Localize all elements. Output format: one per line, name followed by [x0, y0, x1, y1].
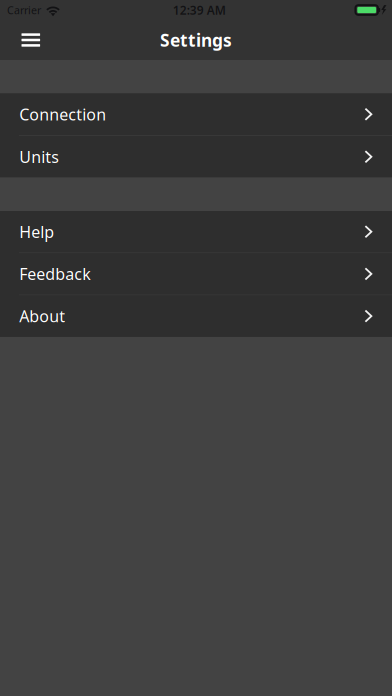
button[interactable]: About [0, 295, 392, 337]
button[interactable]: Units [0, 136, 392, 177]
button[interactable]: Help [0, 211, 392, 252]
button[interactable]: Menu [0, 20, 54, 60]
staticText: Settings [160, 28, 232, 51]
button[interactable]: Feedback [0, 253, 392, 294]
staticText: Units [19, 146, 59, 167]
staticText: About [19, 305, 65, 327]
staticText: Help [19, 221, 54, 242]
staticText: Connection [19, 104, 106, 125]
button[interactable]: Connection [0, 93, 392, 135]
staticText: Feedback [19, 263, 91, 284]
staticText: 12:39 AM [173, 2, 226, 18]
staticText: Carrier [7, 3, 41, 17]
